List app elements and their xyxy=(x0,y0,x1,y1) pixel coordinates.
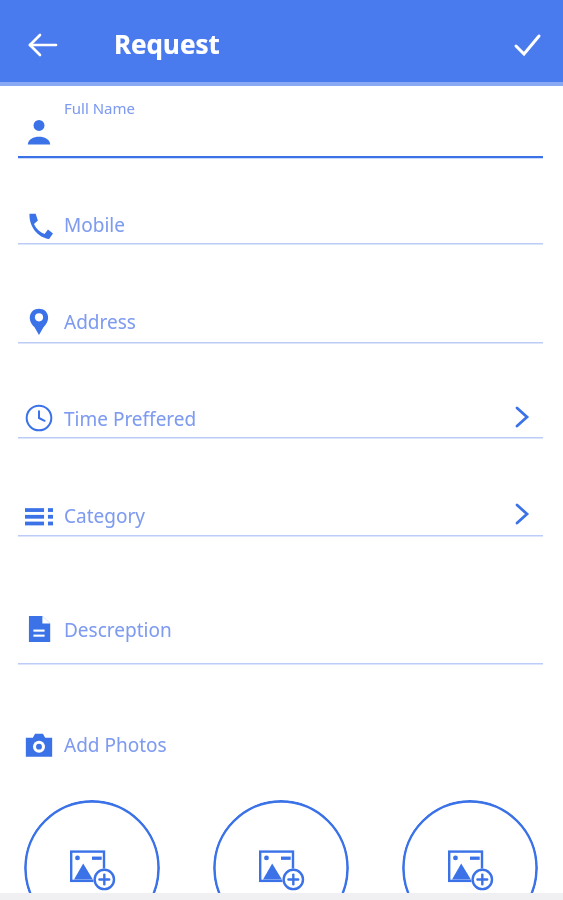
staticText: Category xyxy=(64,503,145,529)
button[interactable] xyxy=(18,602,543,668)
staticText: Time Preffered xyxy=(64,406,197,432)
staticText: Mobile xyxy=(64,212,125,238)
button[interactable]: Open xyxy=(505,400,539,434)
staticText: Add Photos xyxy=(64,732,167,758)
button[interactable]: Add photo xyxy=(24,800,160,900)
staticText: Descreption xyxy=(64,617,172,643)
button[interactable]: Submit xyxy=(503,21,551,69)
button[interactable]: Add photo xyxy=(402,800,538,900)
button[interactable] xyxy=(18,294,543,346)
button[interactable]: Back xyxy=(20,21,68,69)
button[interactable] xyxy=(18,196,543,248)
button[interactable]: Open xyxy=(505,497,539,531)
button[interactable] xyxy=(18,392,543,442)
staticText: Full Name xyxy=(64,98,135,118)
button[interactable]: Add photo xyxy=(213,800,349,900)
staticText: Address xyxy=(64,309,136,335)
staticText: Request xyxy=(114,26,220,61)
button[interactable] xyxy=(18,490,543,540)
button[interactable] xyxy=(18,92,543,164)
button[interactable] xyxy=(18,722,238,770)
